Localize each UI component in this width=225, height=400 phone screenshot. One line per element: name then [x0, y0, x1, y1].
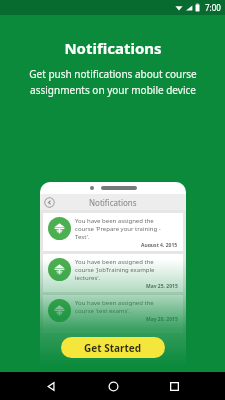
staticText: assignments on your mobile device	[30, 83, 196, 97]
button[interactable]: Home	[102, 375, 124, 397]
staticText: lectures'.	[75, 274, 101, 282]
staticText: 7:00	[205, 2, 221, 13]
button[interactable]: You have been assigned the	[43, 295, 183, 333]
button[interactable]: Back	[40, 375, 62, 397]
staticText: May 20, 2015	[146, 316, 178, 323]
staticText: You have been assigned the	[75, 258, 154, 266]
staticText: Notifications	[89, 197, 137, 208]
staticText: You have been assigned the	[75, 299, 154, 307]
staticText: August 4, 2015	[141, 242, 178, 247]
staticText: Notifications	[64, 38, 162, 58]
button[interactable]: Get Started	[61, 337, 165, 358]
staticText: course 'Prepare your training -	[75, 225, 161, 233]
button[interactable]: Recents	[163, 375, 185, 397]
staticText: Test'.	[75, 233, 90, 241]
staticText: Get push notifications about course	[29, 67, 197, 81]
button[interactable]: You have been assigned the	[43, 213, 183, 251]
staticText: course 'test exams'.	[75, 307, 131, 315]
staticText: You have been assigned the	[75, 217, 154, 225]
staticText: Get Started	[84, 341, 142, 355]
staticText: course 'JobTraining example	[75, 266, 155, 274]
staticText: May 25, 2015	[146, 283, 178, 288]
button[interactable]: You have been assigned the	[43, 254, 183, 292]
button[interactable]: Back	[44, 197, 55, 208]
